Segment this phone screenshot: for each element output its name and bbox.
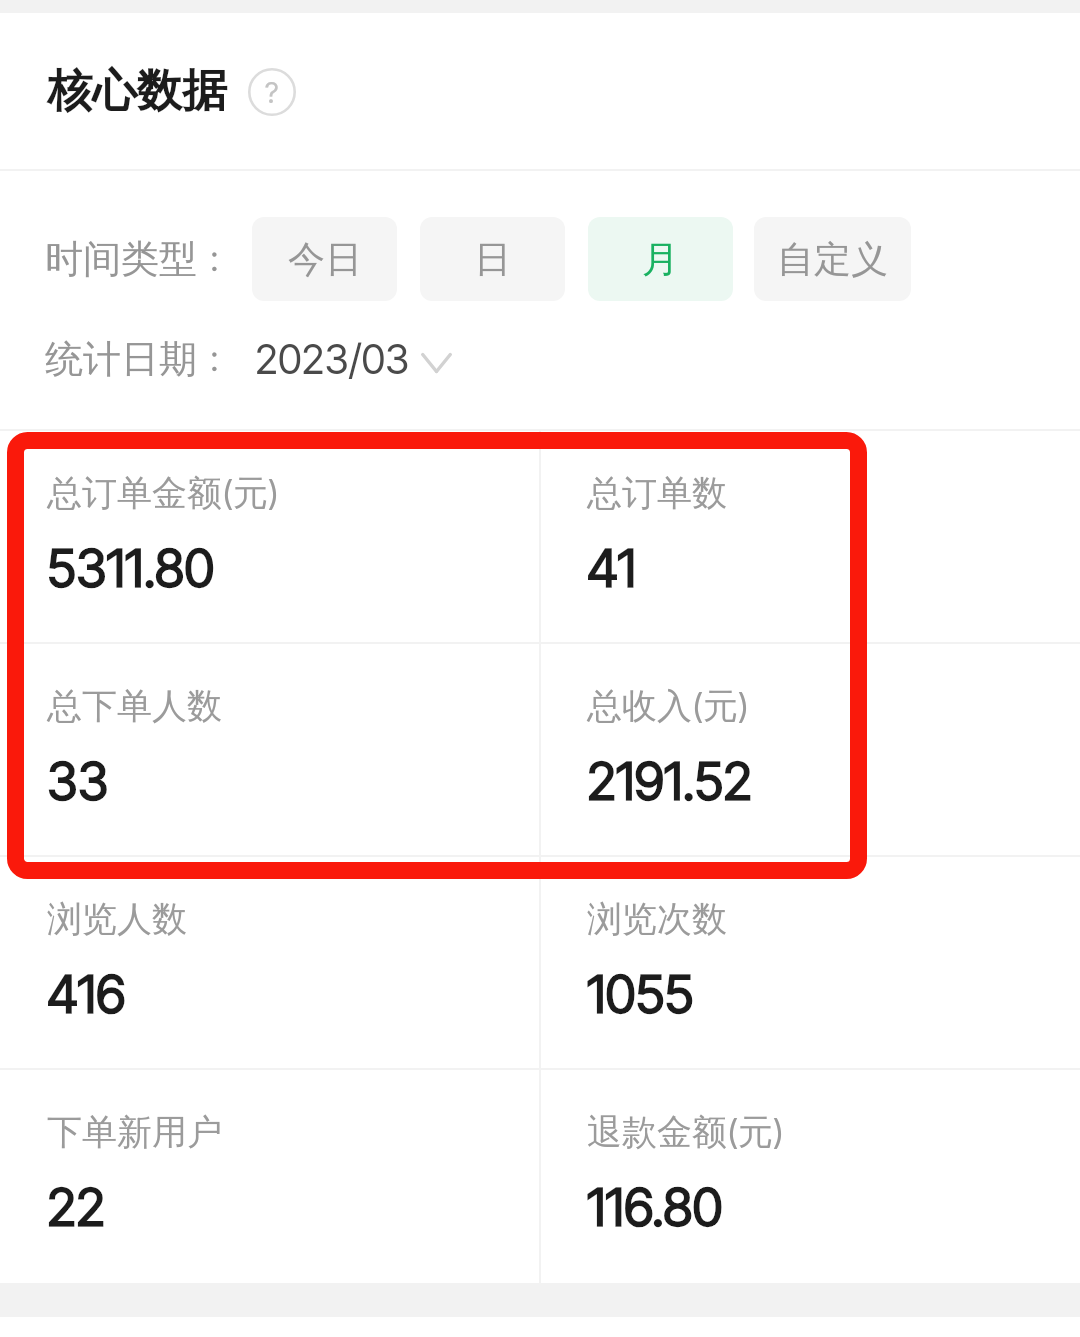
staticText: 下单新用户 [47, 1110, 222, 1154]
staticText: 2191.52 [587, 750, 753, 813]
button[interactable]: 下单新用户 [0, 1070, 539, 1239]
button[interactable]: 浏览人数 [0, 857, 539, 1026]
staticText: 今日 [288, 236, 362, 283]
button[interactable]: 浏览次数 [541, 857, 1080, 1026]
staticText: 416 [47, 963, 126, 1026]
staticText: 浏览次数 [587, 897, 727, 941]
staticText: 33 [47, 750, 109, 813]
button[interactable]: 总收入(元) [541, 644, 1080, 813]
staticText: 5311.80 [47, 537, 215, 600]
button[interactable]: 总订单金额(元) [0, 431, 539, 600]
staticText: 116.80 [587, 1176, 723, 1239]
staticText: 总订单数 [587, 471, 727, 515]
button[interactable]: 2023/03 [255, 334, 452, 384]
button[interactable]: 月 [588, 217, 733, 301]
staticText: 核心数据 [47, 63, 227, 120]
button[interactable]: 帮助说明 [248, 68, 296, 116]
button[interactable]: 今日 [252, 217, 397, 301]
staticText: 1055 [587, 963, 694, 1026]
staticText: 月 [642, 236, 679, 283]
staticText: 2023/03 [255, 334, 410, 384]
button[interactable]: 自定义 [754, 217, 911, 301]
staticText: ? [265, 75, 279, 110]
staticText: 日 [474, 236, 511, 283]
staticText: 总收入(元) [587, 684, 749, 728]
button[interactable]: 总下单人数 [0, 644, 539, 813]
staticText: 自定义 [777, 236, 888, 283]
staticText: 统计日期﹕ [45, 335, 235, 383]
button[interactable]: 退款金额(元) [541, 1070, 1080, 1239]
staticText: 时间类型﹕ [45, 235, 235, 283]
button[interactable]: 日 [420, 217, 565, 301]
staticText: 41 [587, 537, 636, 600]
staticText: 22 [47, 1176, 106, 1239]
staticText: 总订单金额(元) [47, 471, 279, 515]
staticText: 退款金额(元) [587, 1110, 784, 1154]
button[interactable]: 总订单数 [541, 431, 1080, 600]
staticText: 浏览人数 [47, 897, 187, 941]
staticText: 总下单人数 [47, 684, 222, 728]
